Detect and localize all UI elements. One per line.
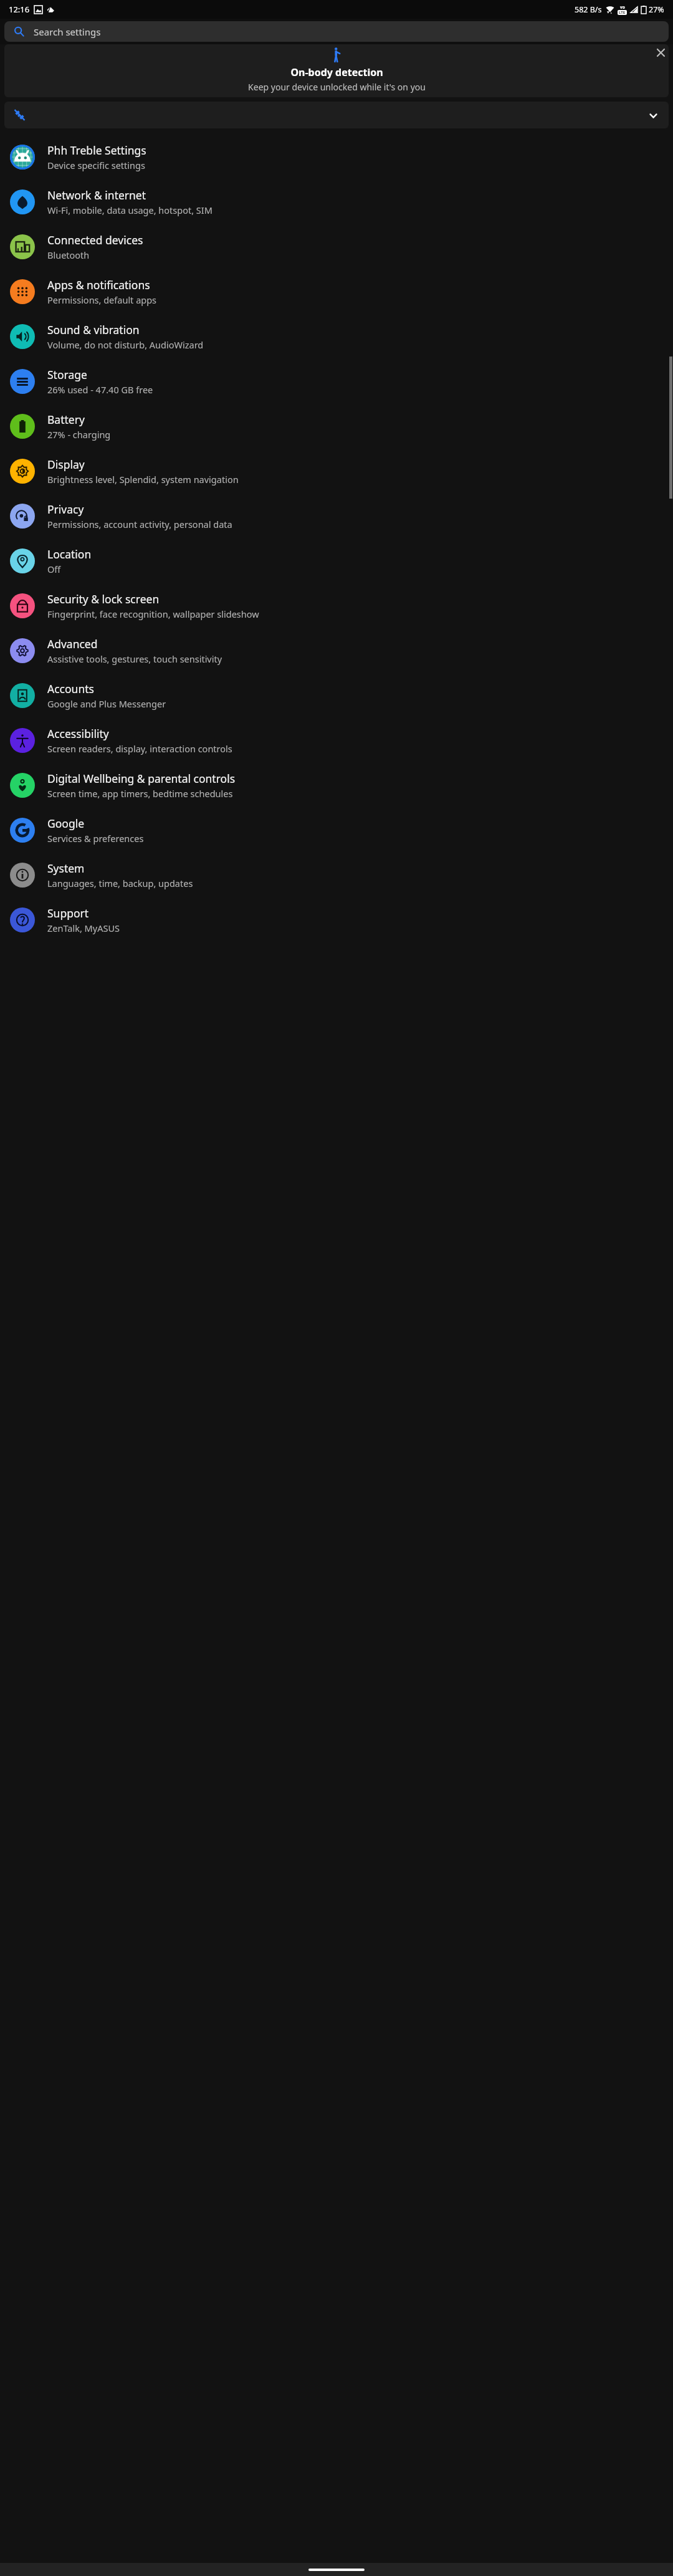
button[interactable]: Phh Treble Settings bbox=[0, 135, 673, 180]
staticText: Sound & vibration bbox=[47, 322, 140, 337]
staticText: Connected devices bbox=[47, 232, 143, 247]
button[interactable]: Google bbox=[0, 808, 673, 853]
button[interactable]: Digital Wellbeing & parental controls bbox=[0, 763, 673, 808]
staticText: Device specific settings bbox=[47, 159, 145, 171]
button[interactable]: Support bbox=[0, 898, 673, 942]
staticText: Assistive tools, gestures, touch sensiti… bbox=[47, 653, 222, 665]
staticText: vo bbox=[620, 4, 625, 10]
staticText: 27% bbox=[649, 4, 664, 15]
staticText: Privacy bbox=[47, 502, 84, 517]
button[interactable]: Search settings bbox=[4, 21, 669, 42]
staticText: Screen readers, display, interaction con… bbox=[47, 742, 232, 755]
button[interactable]: Display bbox=[0, 449, 673, 494]
staticText: Keep your device unlocked while it's on … bbox=[248, 81, 426, 93]
staticText: Security & lock screen bbox=[47, 591, 160, 606]
button[interactable]: Sound & vibration bbox=[0, 314, 673, 359]
staticText: System bbox=[47, 861, 85, 876]
button[interactable]: Storage bbox=[0, 359, 673, 404]
staticText: Screen time, app timers, bedtime schedul… bbox=[47, 787, 233, 800]
button[interactable]: Expand bbox=[4, 102, 669, 128]
staticText: Phh Treble Settings bbox=[47, 143, 146, 158]
staticText: Off bbox=[47, 563, 61, 575]
staticText: 582 B/s bbox=[575, 4, 602, 15]
button[interactable]: On-body detection bbox=[4, 44, 669, 97]
staticText: Apps & notifications bbox=[47, 277, 150, 292]
staticText: Wi-Fi, mobile, data usage, hotspot, SIM bbox=[47, 204, 212, 216]
staticText: Volume, do not disturb, AudioWizard bbox=[47, 338, 204, 351]
staticText: ZenTalk, MyASUS bbox=[47, 922, 120, 934]
button[interactable]: Advanced bbox=[0, 628, 673, 673]
staticText: Search settings bbox=[34, 26, 101, 38]
staticText: Bluetooth bbox=[47, 249, 90, 261]
button[interactable]: Apps & notifications bbox=[0, 269, 673, 314]
button[interactable]: Security & lock screen bbox=[0, 583, 673, 628]
staticText: Display bbox=[47, 457, 85, 472]
button[interactable]: System bbox=[0, 853, 673, 898]
staticText: Google bbox=[47, 816, 85, 831]
staticText: Languages, time, backup, updates bbox=[47, 877, 193, 889]
staticText: Brightness level, Splendid, system navig… bbox=[47, 473, 239, 486]
button[interactable]: Accounts bbox=[0, 673, 673, 718]
button[interactable]: Network & internet bbox=[0, 180, 673, 224]
staticText: On-body detection bbox=[290, 65, 383, 79]
staticText: Permissions, account activity, personal … bbox=[47, 518, 232, 530]
staticText: Accounts bbox=[47, 681, 94, 696]
staticText: Accessibility bbox=[47, 726, 109, 741]
staticText: 27% - charging bbox=[47, 428, 111, 441]
other: Expand bbox=[646, 108, 660, 122]
staticText: LTE bbox=[619, 10, 626, 15]
staticText: Services & preferences bbox=[47, 832, 144, 845]
button[interactable]: Connected devices bbox=[0, 224, 673, 269]
staticText: Support bbox=[47, 906, 89, 921]
staticText: 12:16 bbox=[9, 4, 30, 15]
staticText: Fingerprint, face recognition, wallpaper… bbox=[47, 608, 259, 620]
staticText: Advanced bbox=[47, 636, 98, 651]
staticText: Storage bbox=[47, 367, 87, 382]
staticText: Network & internet bbox=[47, 188, 146, 203]
button[interactable]: Dismiss bbox=[652, 44, 669, 60]
staticText: 26% used - 47.40 GB free bbox=[47, 383, 153, 396]
button[interactable]: Privacy bbox=[0, 494, 673, 539]
staticText: Google and Plus Messenger bbox=[47, 697, 166, 710]
staticText: Location bbox=[47, 547, 92, 562]
button[interactable]: Accessibility bbox=[0, 718, 673, 763]
staticText: Battery bbox=[47, 412, 85, 427]
staticText: Permissions, default apps bbox=[47, 294, 157, 306]
button[interactable]: Battery bbox=[0, 404, 673, 449]
button[interactable]: Location bbox=[0, 539, 673, 583]
staticText: Digital Wellbeing & parental controls bbox=[47, 771, 236, 786]
